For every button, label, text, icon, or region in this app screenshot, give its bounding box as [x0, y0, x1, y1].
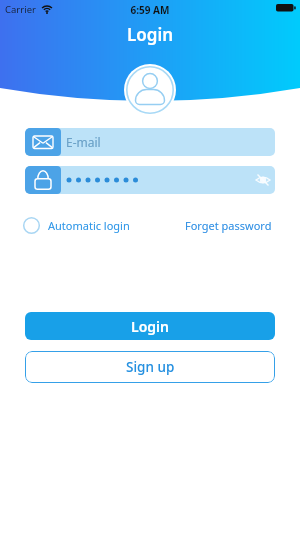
button[interactable]: Login [25, 312, 275, 340]
button[interactable] [25, 166, 275, 194]
staticText: Login [131, 317, 169, 336]
staticText: 6:59 AM [0, 3, 300, 17]
button[interactable]: Automatic login [23, 217, 130, 234]
button[interactable]: Forget password [185, 218, 272, 233]
staticText: E-mail [66, 134, 101, 150]
button[interactable]: E-mail [25, 128, 275, 156]
staticText: Sign up [126, 358, 175, 376]
staticText: Login [0, 23, 300, 46]
staticText: Automatic login [48, 218, 130, 233]
button[interactable]: Sign up [25, 351, 275, 383]
staticText: Carrier [5, 3, 36, 16]
